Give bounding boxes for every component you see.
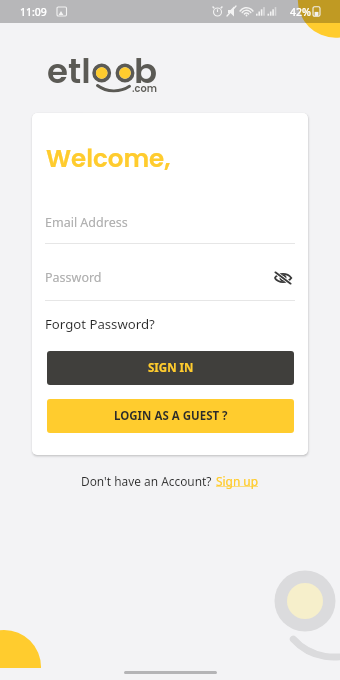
staticText: Password: [45, 269, 102, 286]
staticText: Forgot Password?: [45, 315, 155, 333]
button[interactable]: LOGIN AS A GUEST ?: [47, 399, 294, 433]
staticText: LOGIN AS A GUEST ?: [114, 408, 228, 424]
staticText: Don't have an Account?: [81, 473, 212, 489]
staticText: 42%: [290, 5, 311, 19]
staticText: etl: [47, 47, 91, 92]
staticText: Welcome,: [46, 141, 171, 175]
staticText: .com: [132, 82, 157, 96]
staticText: SIGN IN: [148, 360, 194, 376]
staticText: 11:09: [20, 5, 47, 19]
button[interactable]: Sign up: [216, 473, 259, 489]
staticText: Sign up: [216, 473, 259, 489]
button[interactable]: Show password: [272, 267, 294, 289]
staticText: b: [134, 47, 158, 92]
staticText: Email Address: [45, 214, 128, 231]
button[interactable]: SIGN IN: [47, 351, 294, 385]
button[interactable]: Forgot Password?: [45, 315, 155, 333]
